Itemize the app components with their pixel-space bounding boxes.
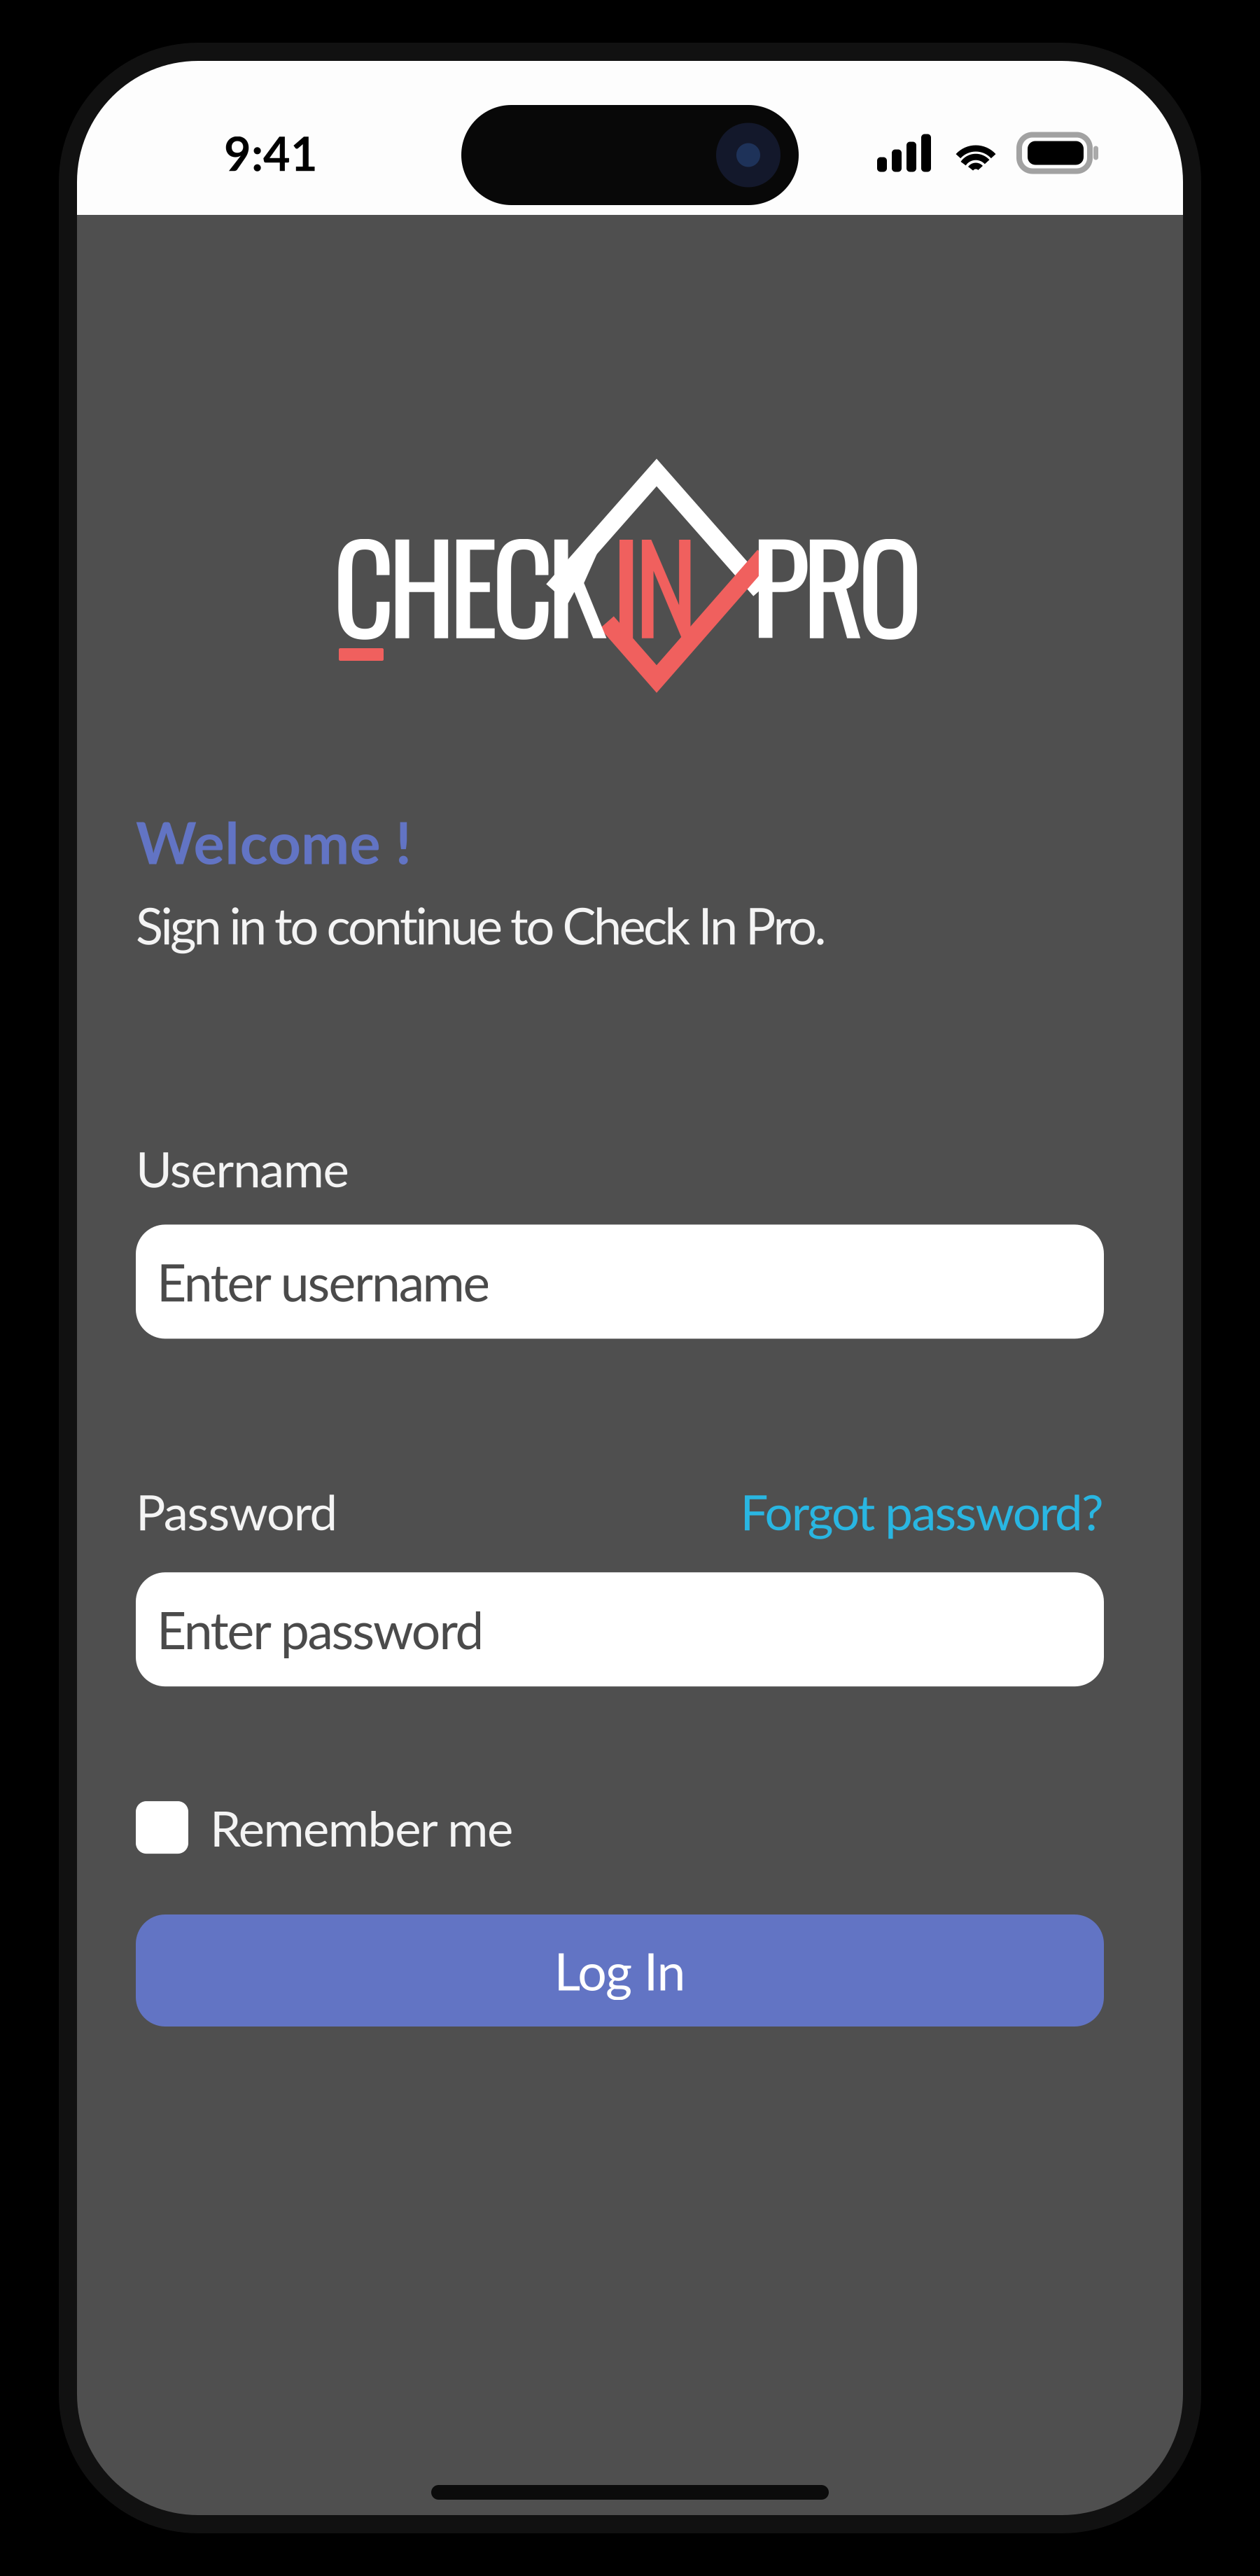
- staticText: Welcome !: [136, 807, 411, 877]
- staticText: IN: [611, 493, 699, 673]
- staticText: Log In: [554, 1940, 686, 2001]
- staticText: Password: [136, 1481, 338, 1541]
- staticText: Enter password: [157, 1599, 484, 1660]
- staticText: Username: [136, 1139, 349, 1198]
- staticText: Forgot password?: [740, 1481, 1104, 1541]
- staticText: Remember me: [210, 1798, 513, 1857]
- staticText: Enter username: [157, 1251, 490, 1312]
- button[interactable]: Remember me: [136, 1798, 1104, 1857]
- staticText: CHECK: [332, 493, 607, 673]
- staticText: Sign in to continue to Check In Pro.: [136, 895, 826, 955]
- staticText: 9:41: [224, 125, 318, 181]
- staticText: PRO: [751, 493, 923, 673]
- button[interactable]: Forgot password?: [740, 1481, 1104, 1541]
- button[interactable]: Log In: [136, 1914, 1104, 2026]
